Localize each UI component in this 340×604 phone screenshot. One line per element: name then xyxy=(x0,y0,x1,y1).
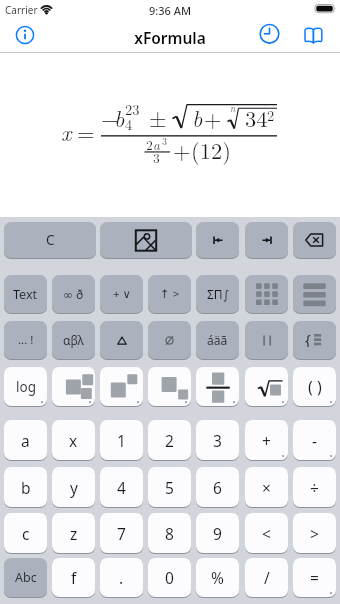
staticText: - xyxy=(312,430,317,451)
staticText: 3 xyxy=(153,148,160,167)
staticText: áäã xyxy=(207,332,228,348)
button[interactable]: z xyxy=(52,513,95,553)
staticText: + xyxy=(173,134,191,166)
button[interactable]: 3 xyxy=(196,420,239,460)
button[interactable]: < xyxy=(245,513,288,553)
button[interactable] xyxy=(303,25,325,46)
staticText: ÷ xyxy=(310,477,319,498)
button[interactable]: f xyxy=(52,558,95,597)
button[interactable]: b xyxy=(4,467,47,507)
button[interactable]: ( ) xyxy=(293,367,336,406)
staticText: αβλ xyxy=(63,332,84,348)
button[interactable]: + ∨ xyxy=(100,275,143,313)
button[interactable]: 4 xyxy=(100,467,143,507)
button[interactable] xyxy=(245,367,288,406)
staticText: + ∨ xyxy=(113,286,131,302)
staticText: a xyxy=(21,430,30,451)
staticText: 2 xyxy=(267,105,275,126)
staticText: 9:36 AM xyxy=(149,3,192,18)
button[interactable] xyxy=(245,321,288,359)
button[interactable]: 0 xyxy=(148,558,191,597)
button[interactable]: log xyxy=(4,367,47,406)
staticText: 5 xyxy=(165,477,174,498)
button[interactable]: Abc xyxy=(4,558,47,597)
button[interactable] xyxy=(148,321,191,359)
button[interactable]: ÷ xyxy=(293,467,336,507)
staticText: < xyxy=(262,523,271,544)
staticText: 23 xyxy=(125,99,140,120)
button[interactable]: x xyxy=(52,420,95,460)
button[interactable] xyxy=(14,24,36,46)
button[interactable]: C xyxy=(4,222,96,258)
button[interactable] xyxy=(100,222,192,258)
staticText: a xyxy=(153,135,160,154)
button[interactable] xyxy=(196,222,239,258)
staticText: ∞ ð xyxy=(63,286,84,302)
button[interactable]: / xyxy=(245,558,288,597)
staticText: 7 xyxy=(117,523,126,544)
staticText: 4 xyxy=(125,114,133,135)
button[interactable]: - xyxy=(293,420,336,460)
staticText: 0 xyxy=(165,567,174,588)
staticText: = xyxy=(310,567,319,588)
staticText: 6 xyxy=(213,477,222,498)
button[interactable]: c xyxy=(4,513,47,553)
button[interactable] xyxy=(196,367,239,406)
button[interactable]: ... ! xyxy=(4,321,47,359)
staticText: . xyxy=(119,567,124,588)
staticText: 34 xyxy=(245,102,268,134)
button[interactable] xyxy=(293,222,336,258)
staticText: ↑ > xyxy=(160,286,180,302)
button[interactable] xyxy=(100,321,143,359)
staticText: 2 xyxy=(165,430,174,451)
staticText: 9 xyxy=(213,523,222,544)
button[interactable]: a xyxy=(4,420,47,460)
staticText: ΣΠ∫ xyxy=(207,286,229,302)
button[interactable]: 2 xyxy=(148,420,191,460)
button[interactable]: . xyxy=(100,558,143,597)
button[interactable]: ΣΠ∫ xyxy=(196,275,239,313)
button[interactable]: y xyxy=(52,467,95,507)
staticText: = xyxy=(77,116,95,148)
button[interactable]: % xyxy=(196,558,239,597)
button[interactable]: > xyxy=(293,513,336,553)
button[interactable]: = xyxy=(293,558,336,597)
button[interactable]: 6 xyxy=(196,467,239,507)
staticText: Text xyxy=(13,286,38,303)
button[interactable]: + xyxy=(245,420,288,460)
button[interactable] xyxy=(148,367,191,406)
staticText: f xyxy=(71,567,77,588)
button[interactable]: ↑ > xyxy=(148,275,191,313)
button[interactable]: { xyxy=(293,321,336,359)
button[interactable]: 1 xyxy=(100,420,143,460)
staticText: C xyxy=(46,231,55,249)
button[interactable]: 8 xyxy=(148,513,191,553)
staticText: × xyxy=(262,477,271,498)
button[interactable] xyxy=(100,367,143,406)
staticText: 3 xyxy=(162,134,167,148)
staticText: 8 xyxy=(165,523,174,544)
staticText: Carrier xyxy=(5,3,38,17)
staticText: n xyxy=(230,101,236,114)
button[interactable]: 9 xyxy=(196,513,239,553)
staticText: + xyxy=(262,430,271,451)
button[interactable] xyxy=(245,275,288,313)
button[interactable] xyxy=(259,23,281,45)
button[interactable]: Text xyxy=(4,275,47,313)
staticText: x xyxy=(69,430,78,451)
staticText: + xyxy=(204,102,222,134)
button[interactable]: ∞ ð xyxy=(52,275,95,313)
button[interactable]: αβλ xyxy=(52,321,95,359)
button[interactable]: 7 xyxy=(100,513,143,553)
staticText: 2 xyxy=(146,135,153,154)
button[interactable]: × xyxy=(245,467,288,507)
button[interactable]: áäã xyxy=(196,321,239,359)
staticText: b xyxy=(114,102,125,134)
button[interactable]: 5 xyxy=(148,467,191,507)
button[interactable] xyxy=(245,222,288,258)
button[interactable] xyxy=(52,367,95,406)
staticText: ( ) xyxy=(308,376,322,398)
staticText: (12) xyxy=(191,134,232,166)
button[interactable] xyxy=(293,275,336,313)
staticText: log xyxy=(16,378,36,396)
